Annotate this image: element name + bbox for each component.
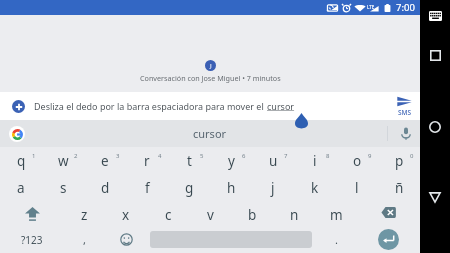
button[interactable]: h	[210, 173, 252, 199]
button[interactable]: Añadir	[12, 100, 25, 113]
button[interactable]: a	[0, 173, 42, 199]
staticText: d	[101, 179, 110, 197]
button[interactable]: e	[84, 147, 126, 173]
staticText: 1	[32, 152, 36, 160]
button[interactable]: w	[42, 147, 84, 173]
button[interactable]: s	[42, 173, 84, 199]
staticText: LTE	[367, 4, 375, 10]
staticText: e	[101, 152, 109, 170]
staticText: .	[335, 232, 338, 247]
staticText: ,	[83, 232, 86, 247]
staticText: l	[355, 179, 359, 197]
button[interactable]: i	[294, 147, 336, 173]
button[interactable]: Aplicaciones recientes	[430, 50, 441, 61]
staticText: cursor	[193, 126, 227, 141]
staticText: f	[145, 179, 150, 197]
staticText: q	[17, 152, 26, 170]
staticText: Conversación con Jose Miguel • 7 minutos	[140, 73, 281, 83]
button[interactable]: ,	[63, 226, 105, 253]
staticText: cursor	[267, 100, 295, 112]
staticText: r	[144, 152, 150, 170]
staticText: x	[122, 206, 130, 224]
button[interactable]: Borrar	[357, 199, 420, 226]
button[interactable]: Micrófono	[401, 127, 411, 140]
button[interactable]: n	[273, 199, 315, 226]
button[interactable]: Intro	[378, 229, 399, 250]
staticText: 7	[284, 152, 288, 160]
staticText: h	[227, 179, 236, 197]
button[interactable]: Inicio	[429, 121, 441, 133]
button[interactable]: f	[126, 173, 168, 199]
button[interactable]: t	[168, 147, 210, 173]
staticText: y	[228, 152, 235, 170]
staticText: c	[165, 206, 172, 224]
staticText: 9	[368, 152, 372, 160]
button[interactable]: cursor	[193, 126, 227, 141]
button[interactable]: d	[84, 173, 126, 199]
staticText: 7:00	[396, 1, 415, 14]
staticText: b	[248, 206, 257, 224]
staticText: 5	[200, 152, 204, 160]
staticText: u	[269, 152, 278, 170]
staticText: g	[185, 179, 194, 197]
staticText: n	[290, 206, 299, 224]
button[interactable]: k	[294, 173, 336, 199]
button[interactable]: y	[210, 147, 252, 173]
staticText: 8	[326, 152, 330, 160]
button[interactable]: l	[336, 173, 378, 199]
staticText: w	[58, 152, 69, 170]
button[interactable]: Mayúsculas	[0, 199, 63, 226]
staticText: k	[311, 179, 319, 197]
button[interactable]: Enviar SMS	[397, 96, 412, 117]
staticText: p	[395, 152, 404, 170]
button[interactable]: x	[105, 199, 147, 226]
button[interactable]: Teclado	[429, 11, 442, 21]
button[interactable]: g	[168, 173, 210, 199]
button[interactable]: v	[189, 199, 231, 226]
staticText: 2	[74, 152, 78, 160]
staticText: i	[313, 152, 317, 170]
staticText: v	[207, 206, 214, 224]
button[interactable]: Atrás	[429, 192, 441, 203]
button[interactable]: m	[315, 199, 357, 226]
staticText: m	[330, 206, 343, 224]
button[interactable]: .	[315, 226, 357, 253]
staticText: 0	[410, 152, 414, 160]
button[interactable]: Google	[9, 126, 25, 142]
button[interactable]: ñ	[378, 173, 420, 199]
staticText: 6	[242, 152, 246, 160]
button[interactable]: q	[0, 147, 42, 173]
staticText: SMS	[398, 108, 412, 117]
button[interactable]: j	[252, 173, 294, 199]
staticText: 3	[116, 152, 120, 160]
button[interactable]: z	[63, 199, 105, 226]
button[interactable]: b	[231, 199, 273, 226]
staticText: s	[60, 179, 67, 197]
button[interactable]: o	[336, 147, 378, 173]
staticText: z	[81, 206, 88, 224]
staticText: ?123	[21, 233, 43, 247]
staticText: Desliza el dedo por la barra espaciadora…	[34, 100, 267, 112]
staticText: a	[17, 179, 25, 197]
button[interactable]: Emoji	[105, 226, 147, 253]
staticText: o	[353, 152, 362, 170]
staticText: t	[187, 152, 192, 170]
staticText: 4	[158, 152, 162, 160]
staticText: j	[271, 179, 275, 197]
button[interactable]: r	[126, 147, 168, 173]
button[interactable]: p	[378, 147, 420, 173]
button[interactable]: u	[252, 147, 294, 173]
staticText: ñ	[395, 179, 404, 197]
button[interactable]: ?123	[0, 226, 63, 253]
staticText: J	[210, 62, 212, 70]
button[interactable]: c	[147, 199, 189, 226]
